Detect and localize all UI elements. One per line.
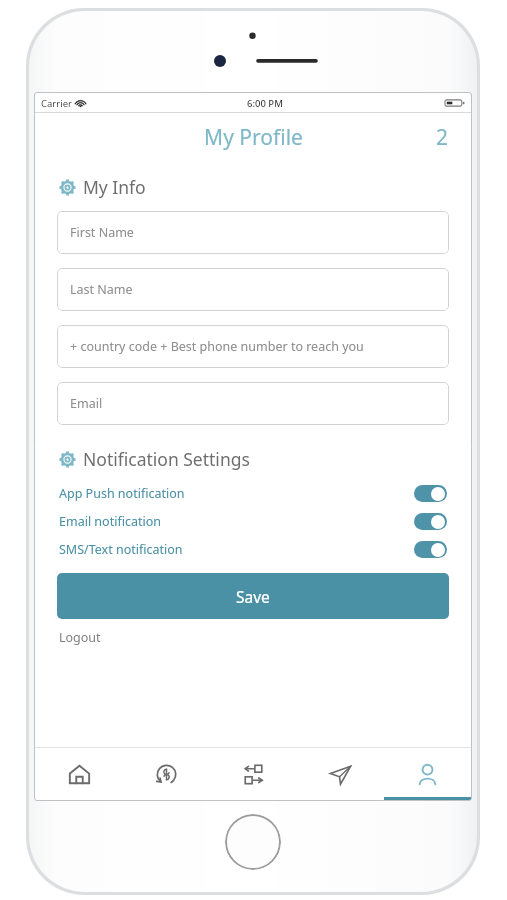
button[interactable]: First Name [57,211,449,254]
button[interactable]: Email [57,382,449,425]
button[interactable]: Email notification [35,507,471,535]
staticText: My Info [83,175,146,199]
staticText: Last Name [70,281,133,298]
button[interactable]: Send [297,748,384,800]
button[interactable]: Last Name [57,268,449,311]
button[interactable]: 2 [436,123,449,152]
button[interactable]: Profile [384,748,471,800]
button[interactable]: Transfer [210,748,297,800]
button[interactable]: Refunds [123,748,210,800]
button[interactable]: SMS/Text notification [35,535,471,563]
staticText: Email [70,395,103,412]
button[interactable]: Home [35,748,123,800]
staticText: 6:00 PM [247,97,283,110]
staticText: Email notification [59,513,161,530]
staticText: SMS/Text notification [59,541,183,558]
staticText: Save [236,586,270,607]
button[interactable]: + country code + Best phone number to re… [57,325,449,368]
button[interactable]: App Push notification [35,479,471,507]
button[interactable]: Save [57,573,449,619]
button[interactable]: Logout [59,629,101,646]
staticText: First Name [70,224,134,241]
staticText: App Push notification [59,485,185,502]
staticText: Notification Settings [83,447,250,471]
staticText: Carrier [41,97,72,110]
staticText: + country code + Best phone number to re… [70,338,364,355]
staticText: My Profile [204,123,303,152]
